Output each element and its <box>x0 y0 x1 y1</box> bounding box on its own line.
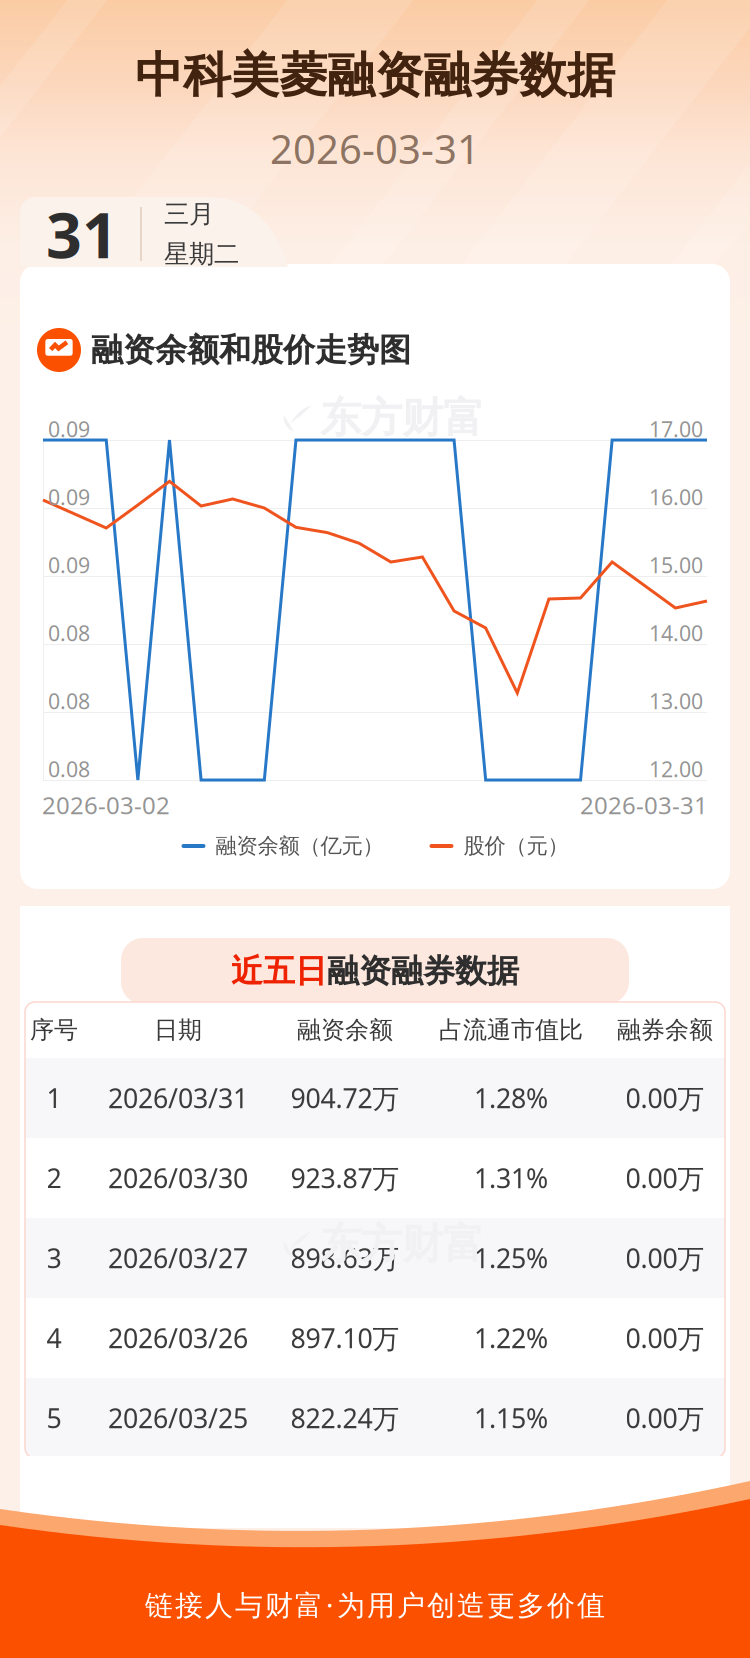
staticText: 1 <box>46 1080 61 1116</box>
staticText: 31 <box>46 192 118 276</box>
staticText: 融资余额（亿元） <box>215 833 383 859</box>
staticText: 1.15% <box>474 1400 548 1436</box>
staticText: 2026/03/25 <box>108 1400 248 1436</box>
staticText: 0.09 <box>48 551 90 579</box>
staticText: 2026/03/31 <box>108 1080 248 1116</box>
staticText: 融资余额 <box>297 1015 393 1045</box>
staticText: 0.08 <box>48 687 90 715</box>
staticText: 4 <box>46 1320 61 1356</box>
staticText: 2 <box>46 1160 61 1196</box>
staticText: 3 <box>46 1240 61 1276</box>
staticText: 三月 <box>164 198 214 229</box>
staticText: 1.25% <box>474 1240 548 1276</box>
staticText: 2026-03-02 <box>42 789 170 821</box>
staticText: 2026/03/30 <box>108 1160 248 1196</box>
staticText: 904.72万 <box>290 1080 399 1116</box>
staticText: 1.28% <box>474 1080 548 1116</box>
staticText: 2026/03/27 <box>108 1240 248 1276</box>
staticText: 东方财富 <box>320 1219 484 1269</box>
staticText: 中科美菱融资融券数据 <box>135 46 615 105</box>
staticText: 近五日 <box>231 951 327 991</box>
staticText: 5 <box>46 1400 61 1436</box>
staticText: 融券余额 <box>617 1015 713 1045</box>
staticText: 923.87万 <box>290 1160 399 1196</box>
staticText: 15.00 <box>649 551 703 579</box>
staticText: 0.08 <box>48 619 90 647</box>
staticText: 13.00 <box>649 687 703 715</box>
staticText: 融资融券数据 <box>327 951 519 991</box>
staticText: 14.00 <box>649 619 703 647</box>
staticText: 2026-03-31 <box>580 789 708 821</box>
staticText: 序号 <box>30 1015 78 1045</box>
staticText: 822.24万 <box>290 1400 399 1436</box>
staticText: 链 接 人 与 财 富 · 为 用 户 创 造 更 多 价 值 <box>145 1586 605 1623</box>
staticText: 2026-03-31 <box>270 122 480 175</box>
staticText: 股价（元） <box>463 833 568 859</box>
staticText: 0.09 <box>48 415 90 443</box>
staticText: 1.31% <box>474 1160 548 1196</box>
staticText: 日期 <box>154 1015 202 1045</box>
staticText: 占流通市值比 <box>439 1015 583 1045</box>
staticText: 0.00万 <box>625 1160 704 1196</box>
staticText: 1.22% <box>474 1320 548 1356</box>
staticText: 12.00 <box>649 755 703 783</box>
staticText: 星期二 <box>164 238 239 270</box>
staticText: 897.10万 <box>290 1320 399 1356</box>
staticText: 0.00万 <box>625 1320 704 1356</box>
staticText: 东方财富 <box>320 393 484 443</box>
staticText: 898.63万 <box>290 1240 399 1276</box>
staticText: 0.08 <box>48 755 90 783</box>
staticText: 0.00万 <box>625 1400 704 1436</box>
staticText: 16.00 <box>649 483 703 511</box>
staticText: 2026/03/26 <box>108 1320 248 1356</box>
staticText: 0.09 <box>48 483 90 511</box>
staticText: 0.00万 <box>625 1240 704 1276</box>
staticText: 17.00 <box>649 415 703 443</box>
staticText: 0.00万 <box>625 1080 704 1116</box>
staticText: 融资余额和股价走势图 <box>91 330 411 370</box>
